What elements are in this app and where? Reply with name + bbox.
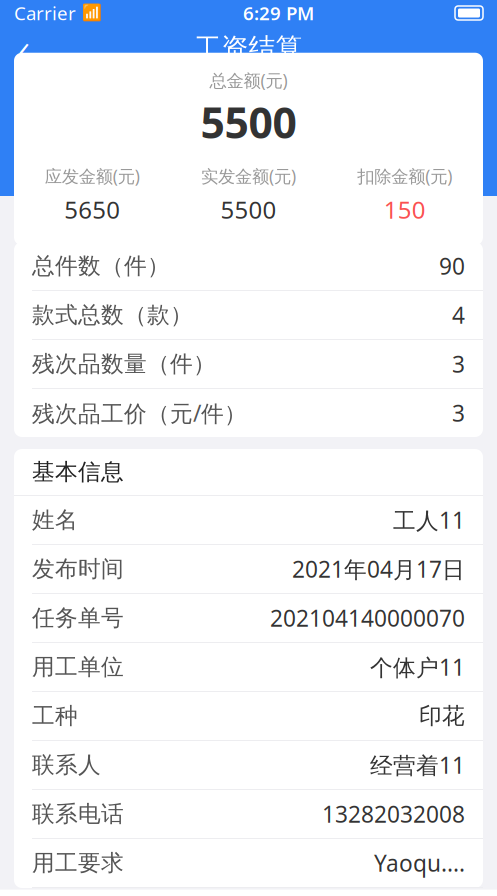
staticText: 用工要求 — [32, 849, 124, 877]
staticText: 发布时间 — [32, 555, 124, 583]
staticText: 5500 — [200, 94, 296, 150]
staticText: 用工单位 — [32, 653, 124, 681]
staticText: 联系电话 — [32, 800, 124, 828]
staticText: 款式总数（款） — [32, 301, 193, 329]
staticText: 工人11 — [393, 505, 465, 535]
staticText: 3 — [452, 349, 465, 379]
staticText: 联系人 — [32, 751, 101, 779]
staticText: 13282032008 — [322, 799, 465, 829]
staticText: 经营着11 — [370, 750, 465, 780]
staticText: ‹ — [18, 18, 30, 78]
staticText: 3 — [452, 398, 465, 428]
staticText: 4 — [452, 300, 465, 330]
staticText: Carrier — [14, 1, 76, 25]
staticText: 总件数（件） — [32, 252, 170, 280]
staticText: 6:29 PM — [243, 1, 314, 25]
staticText: 202104140000070 — [270, 603, 465, 633]
staticText: 150 — [384, 193, 426, 225]
staticText: 个体户11 — [370, 652, 465, 682]
staticText: 印花 — [419, 702, 465, 730]
staticText: 实发金额(元) — [201, 164, 296, 187]
staticText: 任务单号 — [32, 604, 124, 632]
staticText: 90 — [439, 251, 465, 281]
staticText: 5650 — [64, 193, 120, 225]
staticText: 5500 — [220, 193, 276, 225]
staticText: 残次品工价（元/件） — [32, 398, 247, 428]
staticText: 基本信息 — [32, 458, 124, 486]
staticText: 📶 — [82, 4, 102, 22]
staticText: 总金额(元) — [209, 69, 287, 92]
staticText: 2021年04月17日 — [292, 554, 465, 584]
staticText: 工种 — [32, 702, 78, 730]
staticText: 残次品数量（件） — [32, 350, 216, 378]
staticText: 应发金额(元) — [45, 164, 140, 187]
staticText: 姓名 — [32, 506, 78, 534]
button[interactable]: Back — [0, 26, 48, 70]
staticText: Yaoqu.... — [374, 848, 465, 878]
staticText: 工资结算 — [194, 32, 302, 64]
staticText: 扣除金额(元) — [357, 164, 452, 187]
